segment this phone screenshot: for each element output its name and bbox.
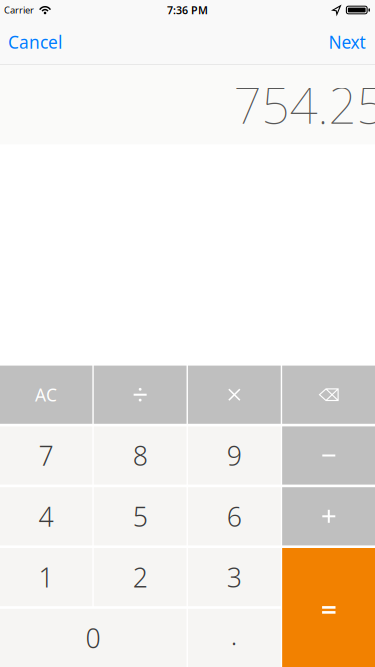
staticText: 7 bbox=[38, 438, 53, 473]
button[interactable]: 1 bbox=[0, 548, 92, 606]
button[interactable]: Subtract bbox=[282, 426, 375, 485]
button[interactable]: Decimal point bbox=[188, 609, 281, 667]
staticText: 9 bbox=[227, 438, 242, 473]
staticText: 0 bbox=[86, 620, 101, 656]
button[interactable]: Multiply bbox=[188, 366, 281, 424]
button[interactable]: 4 bbox=[0, 487, 92, 545]
button[interactable]: Equals bbox=[282, 548, 375, 667]
staticText: Next bbox=[328, 30, 365, 53]
staticText: 2 bbox=[133, 559, 148, 595]
staticText: 3 bbox=[227, 559, 242, 595]
staticText: Carrier bbox=[4, 4, 34, 16]
button[interactable]: 9 bbox=[188, 426, 281, 485]
staticText: AC bbox=[35, 383, 57, 406]
button[interactable]: Next bbox=[328, 30, 365, 53]
button[interactable]: All clear bbox=[0, 366, 92, 424]
button[interactable]: 3 bbox=[188, 548, 281, 606]
staticText: Cancel bbox=[8, 30, 62, 53]
staticText: 6 bbox=[227, 499, 242, 534]
staticText: . bbox=[231, 617, 238, 653]
button[interactable]: Divide bbox=[94, 366, 187, 424]
button[interactable]: 7 bbox=[0, 426, 92, 485]
button[interactable]: Delete bbox=[282, 366, 375, 424]
button[interactable]: 2 bbox=[94, 548, 187, 606]
staticText: 1 bbox=[38, 559, 53, 595]
button[interactable]: 8 bbox=[94, 426, 187, 485]
button[interactable]: 6 bbox=[188, 487, 281, 545]
button[interactable]: 0 bbox=[0, 609, 187, 667]
button[interactable]: Add bbox=[282, 487, 375, 545]
staticText: 8 bbox=[133, 438, 148, 473]
staticText: 754.25 bbox=[233, 72, 375, 137]
staticText: 7:36 PM bbox=[167, 3, 208, 17]
staticText: 5 bbox=[133, 499, 148, 534]
button[interactable]: Cancel bbox=[8, 30, 62, 53]
staticText: 4 bbox=[38, 499, 53, 534]
button[interactable]: 5 bbox=[94, 487, 187, 545]
